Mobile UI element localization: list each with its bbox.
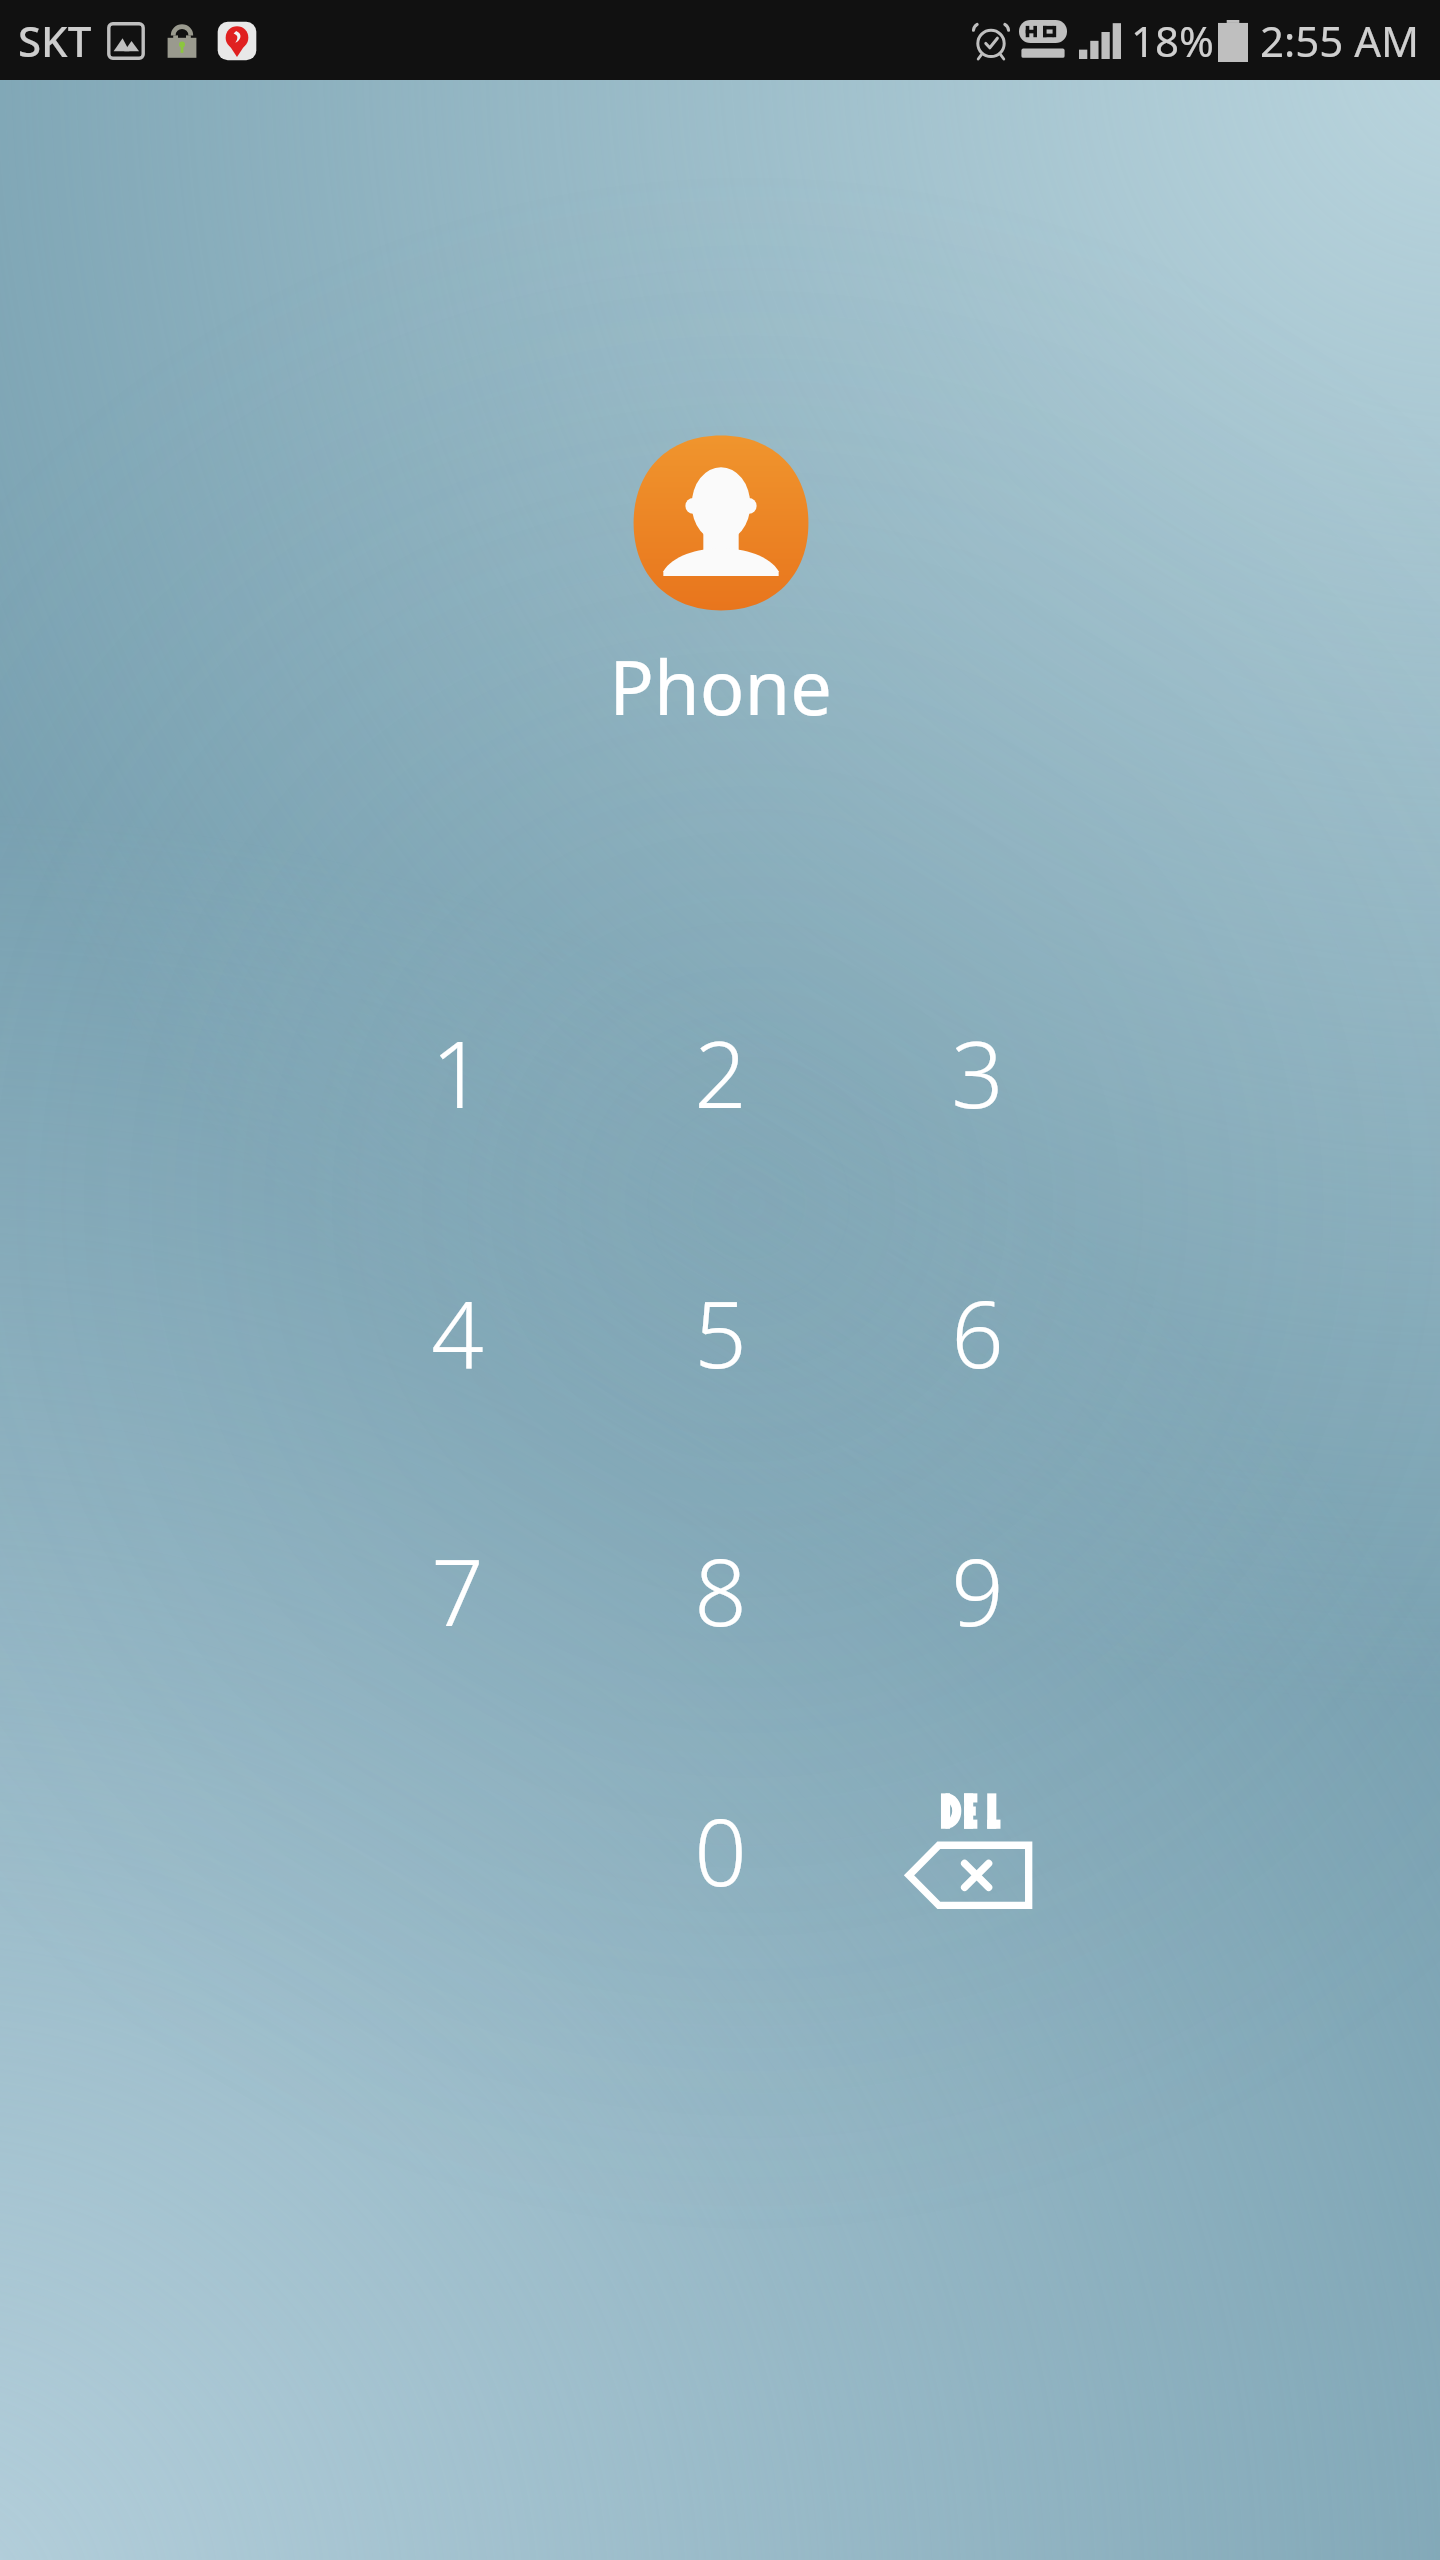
staticText: 18% <box>1131 12 1214 69</box>
staticText: 8 <box>694 1528 747 1653</box>
staticText: 4 <box>431 1270 484 1395</box>
button[interactable]: 3 <box>877 972 1077 1172</box>
staticText: 6 <box>951 1270 1004 1395</box>
button[interactable]: 6 <box>877 1232 1077 1432</box>
staticText: SKT <box>18 12 92 69</box>
staticText: 5 <box>694 1270 747 1395</box>
button[interactable]: 4 <box>357 1232 557 1432</box>
button[interactable]: 1 <box>357 972 557 1172</box>
staticText: 0 <box>694 1788 747 1913</box>
button[interactable]: Phone <box>569 420 872 747</box>
button[interactable]: Delete <box>867 1750 1087 1950</box>
button[interactable]: 2 <box>620 972 820 1172</box>
button[interactable]: 9 <box>877 1490 1077 1690</box>
button[interactable]: 7 <box>357 1490 557 1690</box>
button[interactable]: 5 <box>620 1232 820 1432</box>
staticText: 3 <box>951 1010 1004 1135</box>
staticText: 9 <box>951 1528 1004 1653</box>
staticText: 2 <box>694 1010 747 1135</box>
staticText: Phone <box>609 636 832 737</box>
button[interactable]: 8 <box>620 1490 820 1690</box>
staticText: 2:55 AM <box>1260 12 1420 69</box>
button[interactable]: 0 <box>620 1750 820 1950</box>
staticText: 1 <box>431 1010 484 1135</box>
staticText: 7 <box>431 1528 484 1653</box>
